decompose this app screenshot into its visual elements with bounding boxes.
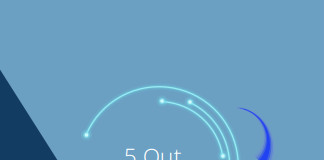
staticText: 5 Out — [124, 141, 182, 160]
